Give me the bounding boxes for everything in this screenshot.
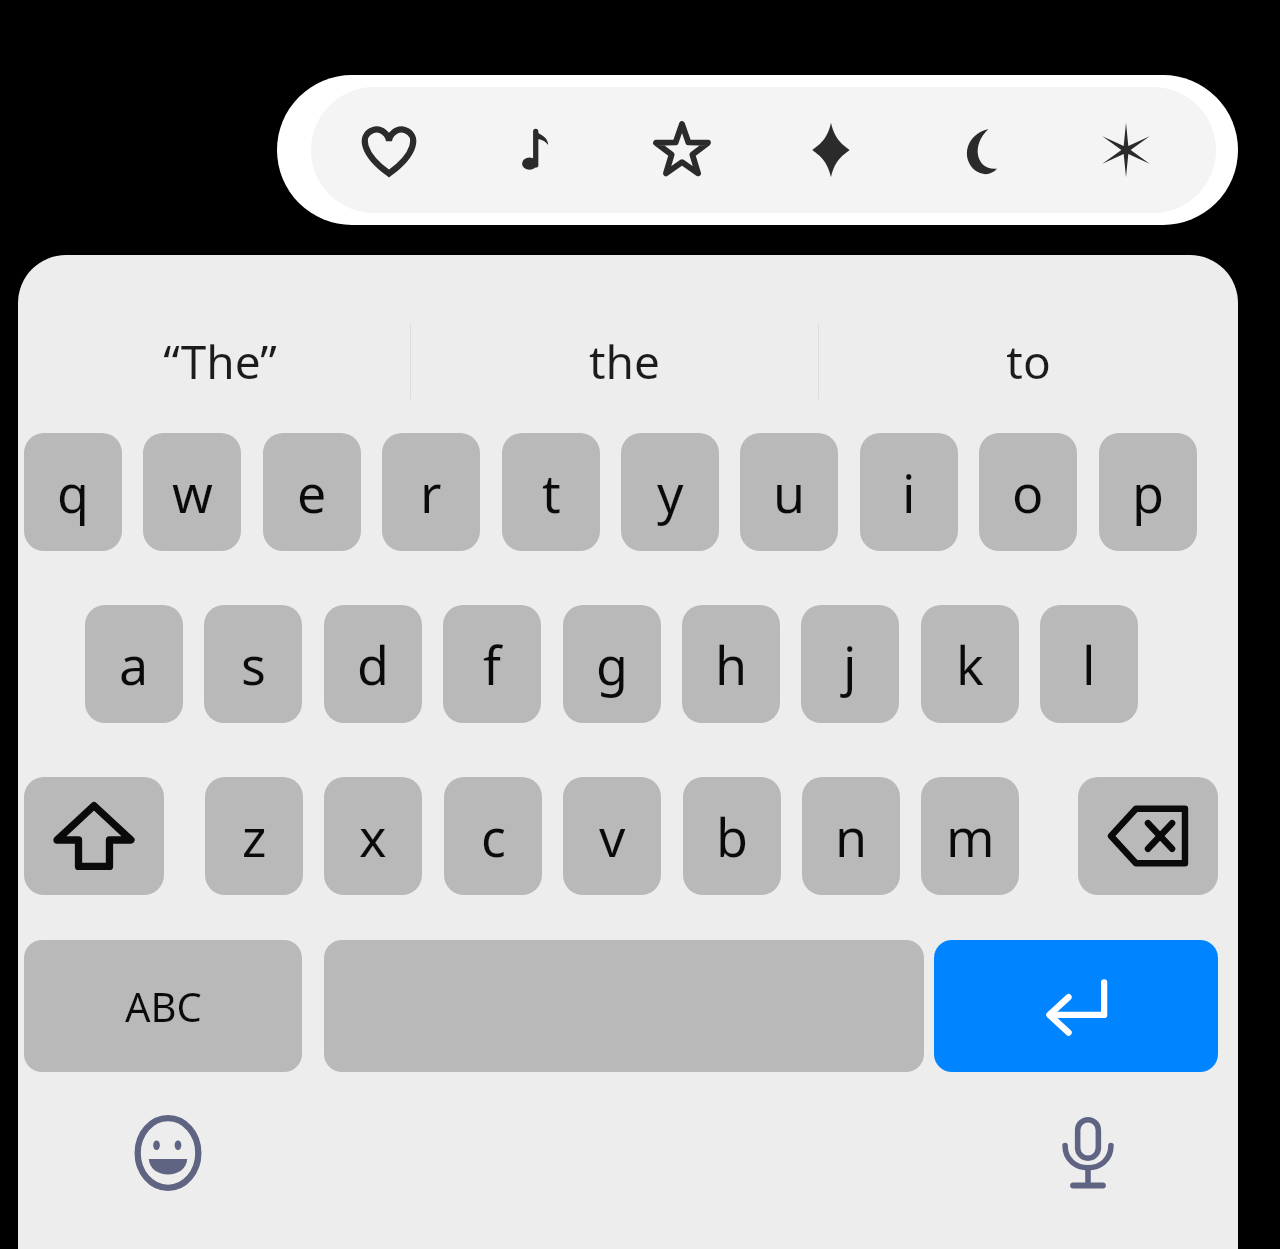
staticText: z bbox=[242, 801, 267, 872]
button[interactable]: s bbox=[204, 605, 302, 723]
button[interactable]: f bbox=[443, 605, 541, 723]
button[interactable]: Music note bbox=[486, 104, 578, 196]
staticText: t bbox=[542, 457, 561, 528]
button[interactable]: to bbox=[826, 305, 1230, 417]
button[interactable]: ABC bbox=[24, 940, 302, 1072]
staticText: ABC bbox=[125, 979, 202, 1033]
staticText: h bbox=[715, 629, 748, 700]
button[interactable]: y bbox=[621, 433, 719, 551]
button[interactable]: l bbox=[1040, 605, 1138, 723]
staticText: to bbox=[1006, 330, 1051, 393]
button[interactable]: Emoji bbox=[118, 1103, 218, 1203]
staticText: m bbox=[946, 801, 995, 872]
button[interactable]: k bbox=[921, 605, 1019, 723]
staticText: g bbox=[596, 629, 628, 700]
staticText: q bbox=[57, 457, 89, 528]
button[interactable]: e bbox=[263, 433, 361, 551]
button[interactable]: n bbox=[802, 777, 900, 895]
button[interactable]: x bbox=[324, 777, 422, 895]
staticText: k bbox=[956, 629, 984, 700]
button[interactable]: j bbox=[801, 605, 899, 723]
staticText: p bbox=[1132, 457, 1164, 528]
button[interactable]: i bbox=[860, 433, 958, 551]
button[interactable]: Sparkle bbox=[785, 104, 877, 196]
button[interactable]: w bbox=[143, 433, 241, 551]
button[interactable]: Return bbox=[934, 940, 1218, 1072]
staticText: n bbox=[835, 801, 868, 872]
staticText: b bbox=[716, 801, 748, 872]
staticText: w bbox=[172, 457, 213, 528]
button[interactable]: Voice input bbox=[1038, 1103, 1138, 1203]
button[interactable]: v bbox=[563, 777, 661, 895]
button[interactable]: h bbox=[682, 605, 780, 723]
staticText: x bbox=[359, 801, 387, 872]
button[interactable]: Shift bbox=[24, 777, 164, 895]
staticText: i bbox=[902, 457, 916, 528]
button[interactable]: “The” bbox=[18, 305, 422, 417]
button[interactable]: the bbox=[422, 305, 826, 417]
button[interactable]: m bbox=[921, 777, 1019, 895]
button[interactable]: Heart bbox=[343, 104, 435, 196]
button[interactable]: Star bbox=[636, 104, 728, 196]
button[interactable]: z bbox=[205, 777, 303, 895]
button[interactable]: b bbox=[683, 777, 781, 895]
button[interactable]: r bbox=[382, 433, 480, 551]
button[interactable]: a bbox=[85, 605, 183, 723]
staticText: “The” bbox=[163, 330, 277, 393]
staticText: v bbox=[599, 801, 626, 872]
button[interactable]: d bbox=[324, 605, 422, 723]
button[interactable]: Backspace bbox=[1078, 777, 1218, 895]
staticText: s bbox=[241, 629, 266, 700]
staticText: the bbox=[589, 330, 660, 393]
staticText: o bbox=[1012, 457, 1044, 528]
staticText: a bbox=[119, 629, 149, 700]
button[interactable]: Starburst bbox=[1080, 104, 1172, 196]
staticText: y bbox=[657, 457, 684, 528]
staticText: e bbox=[297, 457, 327, 528]
staticText: j bbox=[843, 629, 857, 700]
button[interactable]: p bbox=[1099, 433, 1197, 551]
staticText: r bbox=[420, 457, 442, 528]
staticText: d bbox=[357, 629, 389, 700]
button[interactable]: o bbox=[979, 433, 1077, 551]
staticText: f bbox=[483, 629, 501, 700]
button[interactable]: t bbox=[502, 433, 600, 551]
button[interactable]: Moon bbox=[930, 104, 1022, 196]
staticText: c bbox=[481, 801, 506, 872]
button[interactable]: q bbox=[24, 433, 122, 551]
button[interactable]: g bbox=[563, 605, 661, 723]
button[interactable]: c bbox=[444, 777, 542, 895]
staticText: u bbox=[773, 457, 806, 528]
staticText: l bbox=[1082, 629, 1096, 700]
button[interactable]: u bbox=[740, 433, 838, 551]
